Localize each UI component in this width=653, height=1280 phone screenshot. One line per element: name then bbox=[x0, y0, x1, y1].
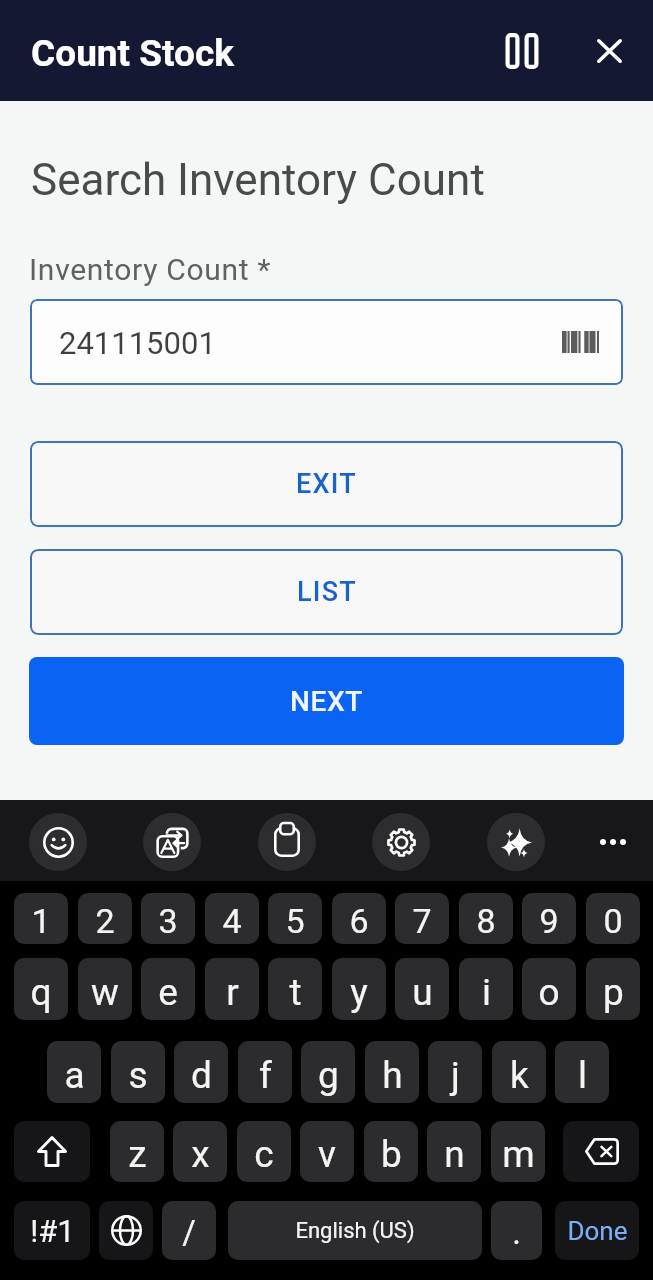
button[interactable]: More options bbox=[584, 813, 642, 871]
staticText: 8 bbox=[476, 901, 496, 941]
button[interactable]: p bbox=[586, 958, 640, 1020]
button[interactable]: EXIT bbox=[30, 441, 623, 527]
button[interactable]: Emoji bbox=[29, 813, 87, 871]
button[interactable]: x bbox=[173, 1121, 227, 1182]
button[interactable]: i bbox=[459, 958, 513, 1020]
staticText: u bbox=[412, 971, 433, 1014]
staticText: 6 bbox=[349, 901, 369, 941]
button[interactable]: t bbox=[268, 958, 322, 1020]
button[interactable]: r bbox=[205, 958, 259, 1020]
button[interactable]: LIST bbox=[30, 549, 623, 635]
button[interactable]: w bbox=[78, 958, 132, 1020]
button[interactable]: Scan barcode bbox=[547, 320, 613, 364]
staticText: 5 bbox=[285, 901, 305, 941]
staticText: f bbox=[259, 1054, 272, 1097]
button[interactable]: 3 bbox=[141, 893, 195, 944]
staticText: e bbox=[158, 971, 178, 1014]
staticText: m bbox=[502, 1133, 535, 1176]
button[interactable]: u bbox=[395, 958, 449, 1020]
button[interactable]: Change keyboard bbox=[99, 1201, 153, 1260]
button[interactable]: 241115001 bbox=[30, 299, 623, 385]
staticText: NEXT bbox=[290, 685, 363, 718]
staticText: EXIT bbox=[296, 468, 357, 500]
staticText: t bbox=[289, 971, 302, 1014]
button[interactable]: 7 bbox=[395, 893, 449, 944]
button[interactable]: e bbox=[141, 958, 195, 1020]
button[interactable]: m bbox=[491, 1121, 545, 1182]
button[interactable]: d bbox=[174, 1041, 228, 1103]
staticText: . bbox=[512, 1213, 521, 1252]
button[interactable]: q bbox=[14, 958, 68, 1020]
button[interactable]: Done bbox=[555, 1201, 639, 1260]
button[interactable]: Shift bbox=[14, 1121, 90, 1182]
staticText: / bbox=[182, 1213, 196, 1252]
staticText: !#1 bbox=[30, 1213, 75, 1249]
button[interactable]: AI assist bbox=[487, 813, 545, 871]
button[interactable]: f bbox=[238, 1041, 292, 1103]
button[interactable]: h bbox=[365, 1041, 419, 1103]
staticText: w bbox=[91, 971, 119, 1014]
staticText: Count Stock bbox=[31, 32, 235, 75]
staticText: s bbox=[128, 1054, 148, 1097]
staticText: Search Inventory Count bbox=[31, 154, 485, 206]
button[interactable]: b bbox=[364, 1121, 418, 1182]
button[interactable]: j bbox=[428, 1041, 482, 1103]
staticText: q bbox=[30, 971, 52, 1014]
staticText: z bbox=[128, 1133, 147, 1176]
button[interactable]: o bbox=[522, 958, 576, 1020]
button[interactable]: 9 bbox=[522, 893, 576, 944]
staticText: Done bbox=[567, 1216, 628, 1246]
staticText: p bbox=[603, 971, 624, 1014]
button[interactable]: 8 bbox=[459, 893, 513, 944]
button[interactable]: 5 bbox=[268, 893, 322, 944]
staticText: l bbox=[578, 1054, 587, 1097]
staticText: 3 bbox=[158, 901, 178, 941]
staticText: 1 bbox=[31, 901, 51, 941]
button[interactable]: 1 bbox=[14, 893, 68, 944]
button[interactable]: . bbox=[491, 1201, 542, 1260]
button[interactable]: l bbox=[555, 1041, 609, 1103]
staticText: v bbox=[318, 1133, 336, 1176]
button[interactable]: NEXT bbox=[29, 657, 624, 745]
staticText: b bbox=[381, 1133, 402, 1176]
button[interactable]: y bbox=[332, 958, 386, 1020]
staticText: g bbox=[318, 1054, 339, 1097]
button[interactable]: / bbox=[162, 1201, 216, 1260]
button[interactable]: 6 bbox=[332, 893, 386, 944]
button[interactable]: Settings bbox=[372, 813, 430, 871]
staticText: y bbox=[350, 971, 368, 1014]
staticText: h bbox=[382, 1054, 403, 1097]
button[interactable]: English (US) bbox=[228, 1201, 482, 1260]
staticText: c bbox=[254, 1133, 274, 1176]
staticText: k bbox=[510, 1054, 529, 1097]
staticText: a bbox=[64, 1054, 85, 1097]
staticText: LIST bbox=[297, 576, 357, 608]
staticText: n bbox=[444, 1133, 465, 1176]
button[interactable]: Clipboard bbox=[258, 813, 316, 871]
staticText: x bbox=[191, 1133, 210, 1176]
button[interactable]: a bbox=[47, 1041, 101, 1103]
staticText: 4 bbox=[222, 901, 242, 941]
button[interactable]: k bbox=[492, 1041, 546, 1103]
staticText: 0 bbox=[603, 901, 623, 941]
button[interactable]: n bbox=[427, 1121, 481, 1182]
button[interactable]: v bbox=[300, 1121, 354, 1182]
button[interactable]: c bbox=[237, 1121, 291, 1182]
staticText: 7 bbox=[412, 901, 432, 941]
button[interactable]: Close bbox=[576, 18, 642, 84]
button[interactable]: 2 bbox=[78, 893, 132, 944]
button[interactable]: !#1 bbox=[14, 1201, 90, 1260]
button[interactable]: Backspace bbox=[563, 1121, 639, 1182]
staticText: 241115001 bbox=[59, 325, 216, 361]
staticText: i bbox=[482, 971, 491, 1014]
button[interactable]: z bbox=[110, 1121, 164, 1182]
button[interactable]: Translate bbox=[143, 813, 201, 871]
button[interactable]: 4 bbox=[205, 893, 259, 944]
staticText: o bbox=[538, 971, 560, 1014]
staticText: j bbox=[451, 1054, 460, 1097]
button[interactable]: g bbox=[301, 1041, 355, 1103]
staticText: English (US) bbox=[295, 1218, 415, 1244]
button[interactable]: Split screen bbox=[489, 18, 555, 84]
button[interactable]: s bbox=[111, 1041, 165, 1103]
button[interactable]: 0 bbox=[586, 893, 640, 944]
